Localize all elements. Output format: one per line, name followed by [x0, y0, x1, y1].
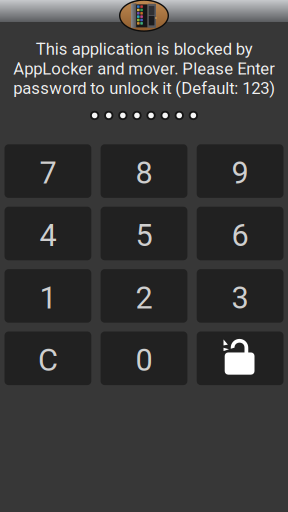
- button[interactable]: 6: [197, 207, 283, 260]
- button[interactable]: 7: [4, 144, 91, 198]
- button[interactable]: C: [4, 331, 91, 385]
- staticText: This application is blocked by AppLocker…: [13, 39, 275, 98]
- button[interactable]: Unlock: [197, 331, 283, 385]
- staticText: 7: [39, 155, 56, 191]
- button[interactable]: 5: [101, 207, 187, 260]
- staticText: 9: [232, 155, 249, 191]
- button[interactable]: 3: [197, 269, 283, 323]
- staticText: 2: [135, 280, 152, 316]
- staticText: 5: [135, 217, 152, 253]
- button[interactable]: 9: [197, 144, 283, 198]
- staticText: 0: [135, 342, 152, 378]
- button[interactable]: 4: [4, 207, 91, 260]
- staticText: C: [38, 342, 58, 378]
- staticText: 1: [39, 280, 56, 316]
- button[interactable]: 0: [101, 331, 187, 385]
- button[interactable]: 8: [101, 144, 187, 198]
- button[interactable]: 2: [101, 269, 187, 323]
- button[interactable]: 1: [4, 269, 91, 323]
- staticText: 3: [232, 280, 249, 316]
- staticText: 8: [135, 155, 152, 191]
- staticText: 6: [232, 217, 249, 253]
- staticText: 4: [39, 217, 56, 253]
